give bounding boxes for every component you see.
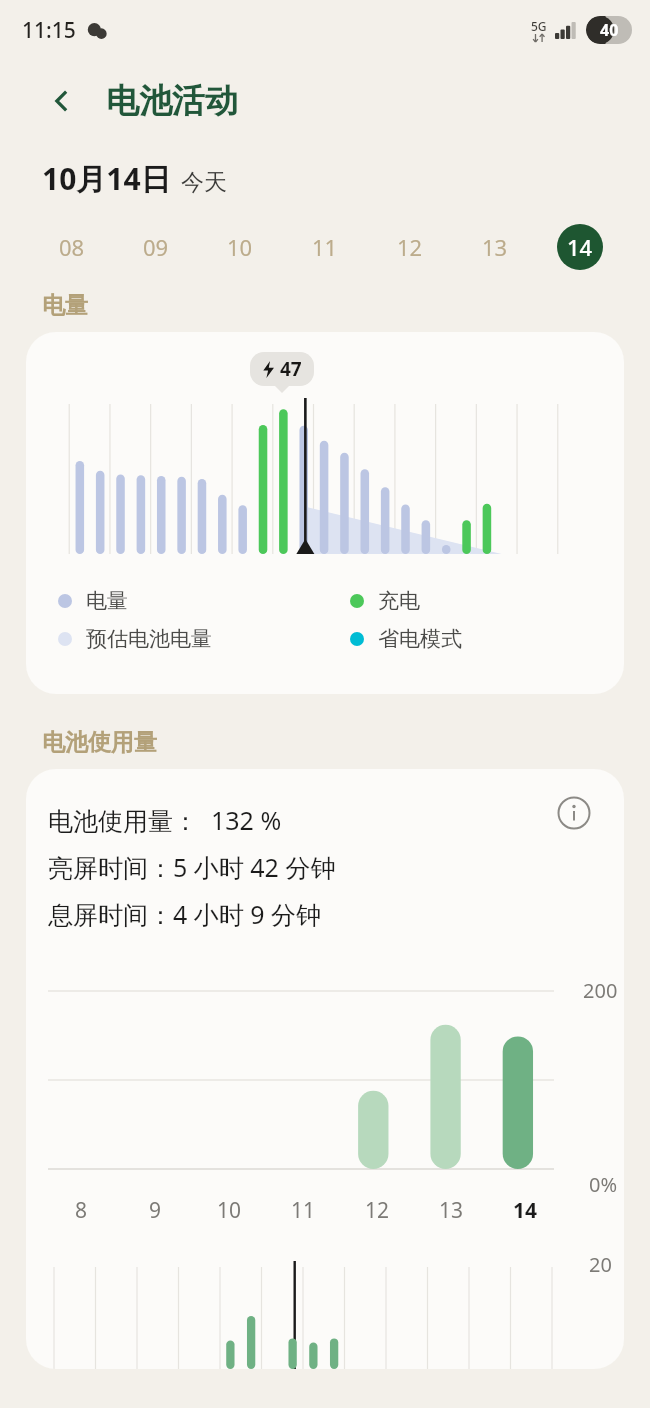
staticText: 12	[365, 1196, 390, 1225]
button[interactable]: 14	[537, 221, 622, 273]
staticText: 10	[217, 1196, 242, 1225]
staticText: 预估电池电量	[86, 626, 212, 652]
staticText: 10月14日	[42, 158, 171, 199]
staticText: 电池活动	[106, 80, 238, 122]
staticText: 8	[75, 1196, 88, 1225]
staticText: 200	[583, 977, 618, 1004]
staticText: 充电	[378, 588, 420, 614]
button[interactable]: 返回	[40, 79, 84, 123]
staticText: 47	[280, 356, 302, 382]
staticText: 电池使用量	[42, 728, 157, 757]
staticText: 电量	[86, 588, 128, 614]
staticText: 息屏时间：4 小时 9 分钟	[48, 897, 322, 931]
button[interactable]: 47	[26, 332, 624, 694]
staticText: 今天	[181, 168, 227, 197]
button[interactable]: 08	[30, 221, 114, 273]
staticText: 14	[513, 1196, 538, 1225]
staticText: 5G	[531, 18, 547, 34]
button[interactable]: 11	[282, 221, 367, 273]
staticText: 09	[143, 232, 169, 262]
staticText: 电池使用量： 132 %	[48, 803, 282, 837]
button[interactable]: 信息	[552, 791, 596, 835]
staticText: 9	[149, 1196, 162, 1225]
staticText: 10	[227, 232, 253, 262]
staticText: 20	[589, 1251, 612, 1278]
staticText: 13	[439, 1196, 464, 1225]
staticText: 电量	[42, 291, 88, 320]
button[interactable]: 12	[367, 221, 452, 273]
staticText: 11	[291, 1196, 316, 1225]
staticText: 13	[482, 232, 508, 262]
staticText: 亮屏时间：5 小时 42 分钟	[48, 850, 336, 884]
staticText: 08	[59, 232, 85, 262]
staticText: 14	[567, 232, 593, 262]
button[interactable]: 电池使用量： 132 %	[26, 769, 624, 1369]
staticText: 省电模式	[378, 626, 462, 652]
staticText: 40	[600, 19, 619, 41]
button[interactable]: 13	[452, 221, 537, 273]
button[interactable]: 10	[198, 221, 282, 273]
button[interactable]: 09	[114, 221, 198, 273]
staticText: 0%	[589, 1171, 618, 1198]
staticText: 11	[312, 232, 338, 262]
staticText: 12	[397, 232, 423, 262]
staticText: 11:15	[22, 16, 76, 45]
